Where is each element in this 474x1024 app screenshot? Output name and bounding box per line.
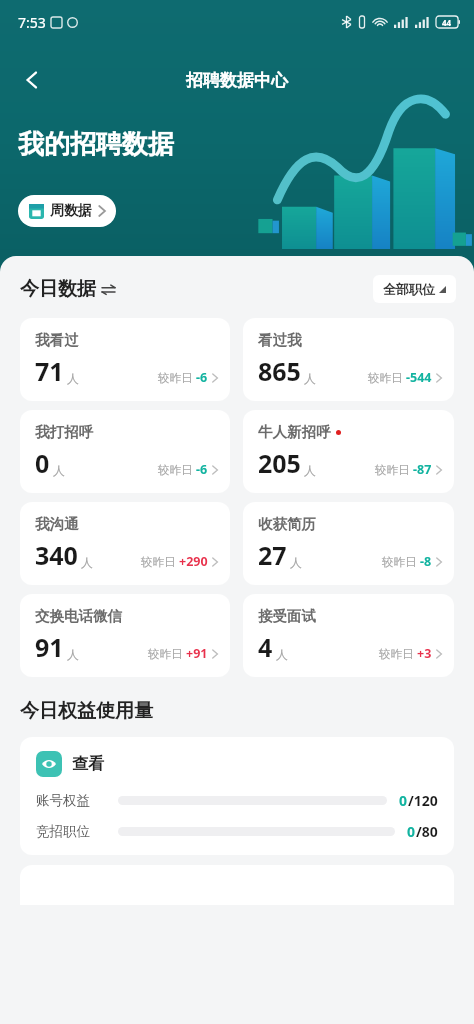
- staticText: 较昨日: [382, 555, 417, 569]
- staticText: 0: [35, 446, 50, 480]
- staticText: +3: [417, 645, 432, 662]
- staticText: 71: [35, 354, 64, 388]
- staticText: 0: [399, 791, 408, 810]
- staticText: 0: [407, 822, 416, 841]
- staticText: /120: [408, 791, 438, 810]
- button[interactable]: 看过我: [243, 318, 454, 401]
- staticText: -6: [196, 369, 208, 386]
- staticText: 今日权益使用量: [20, 699, 153, 723]
- button[interactable]: Back: [10, 58, 54, 102]
- staticText: 较昨日: [379, 647, 414, 661]
- staticText: 人: [276, 647, 288, 662]
- staticText: 账号权益: [36, 792, 108, 809]
- staticText: 91: [35, 630, 64, 664]
- button[interactable]: 我看过: [20, 318, 230, 401]
- staticText: 今日数据: [20, 277, 96, 301]
- staticText: -544: [406, 369, 432, 386]
- staticText: 我的招聘数据: [18, 128, 174, 161]
- staticText: 人: [67, 371, 79, 386]
- staticText: -8: [420, 553, 432, 570]
- button[interactable]: 查看: [20, 737, 454, 855]
- staticText: 人: [304, 463, 316, 478]
- staticText: 全部职位: [383, 281, 435, 297]
- staticText: 人: [53, 463, 65, 478]
- staticText: 人: [290, 555, 302, 570]
- staticText: -87: [413, 461, 432, 478]
- staticText: 较昨日: [368, 371, 403, 385]
- button[interactable]: 交换电话微信: [20, 594, 230, 677]
- staticText: 查看: [72, 754, 104, 774]
- staticText: 较昨日: [375, 463, 410, 477]
- staticText: 865: [258, 354, 301, 388]
- button[interactable]: 接受面试: [243, 594, 454, 677]
- staticText: 竞招职位: [36, 823, 108, 840]
- staticText: 我看过: [35, 331, 79, 349]
- staticText: +91: [186, 645, 208, 662]
- staticText: 招聘数据中心: [186, 70, 288, 91]
- button[interactable]: 我打招呼: [20, 410, 230, 493]
- staticText: 收获简历: [258, 515, 316, 533]
- staticText: 205: [258, 446, 301, 480]
- staticText: 44: [442, 17, 452, 28]
- staticText: 人: [67, 647, 79, 662]
- staticText: 27: [258, 538, 287, 572]
- staticText: 4: [258, 630, 273, 664]
- staticText: 较昨日: [158, 463, 193, 477]
- staticText: 人: [304, 371, 316, 386]
- staticText: 人: [81, 555, 93, 570]
- staticText: 340: [35, 538, 78, 572]
- button[interactable]: 周数据: [18, 195, 116, 227]
- staticText: 看过我: [258, 331, 302, 349]
- staticText: 较昨日: [148, 647, 183, 661]
- staticText: -6: [196, 461, 208, 478]
- staticText: 较昨日: [158, 371, 193, 385]
- button[interactable]: 我沟通: [20, 502, 230, 585]
- staticText: 接受面试: [258, 607, 316, 625]
- staticText: 牛人新招呼: [258, 423, 331, 441]
- staticText: 7:53: [18, 13, 46, 32]
- staticText: +290: [179, 553, 208, 570]
- staticText: 周数据: [50, 202, 92, 220]
- staticText: /80: [416, 822, 438, 841]
- button[interactable]: 收获简历: [243, 502, 454, 585]
- staticText: 我打招呼: [35, 423, 93, 441]
- button[interactable]: 全部职位: [373, 275, 456, 303]
- staticText: 较昨日: [141, 555, 176, 569]
- button[interactable]: 牛人新招呼: [243, 410, 454, 493]
- staticText: 交换电话微信: [35, 607, 122, 625]
- staticText: 我沟通: [35, 515, 79, 533]
